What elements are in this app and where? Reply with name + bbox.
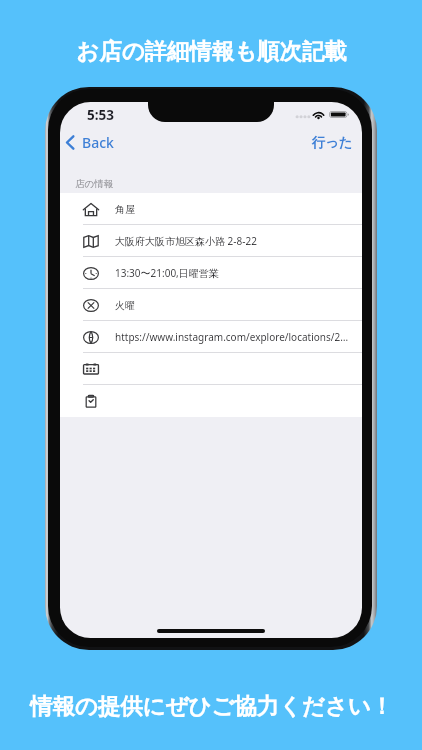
staticText: 店の情報 [75,178,114,190]
staticText: 大阪府大阪市旭区森小路 2-8-22 [115,234,257,248]
staticText: 13:30〜21:00,日曜営業 [115,266,219,280]
button[interactable]: 行った [306,130,359,155]
button[interactable]: Closed day [60,289,362,321]
staticText: Back [82,133,114,152]
staticText: お店の詳細情報も順次記載 [76,37,347,65]
staticText: 情報の提供にぜひご協力ください！ [30,692,393,720]
staticText: 行った [312,134,353,151]
staticText: 火曜 [115,299,135,312]
button[interactable]: Back [61,129,120,156]
button[interactable]: Hours [60,257,362,289]
button[interactable]: Website [60,321,362,353]
staticText: 5:53 [87,106,114,124]
button[interactable]: Notes [60,385,362,417]
button[interactable]: Calendar [60,353,362,385]
button[interactable]: Home [60,193,362,225]
staticText: https://www.instagram.com/explore/locati… [115,330,349,344]
button[interactable]: Map [60,225,362,257]
staticText: 角屋 [115,203,135,216]
